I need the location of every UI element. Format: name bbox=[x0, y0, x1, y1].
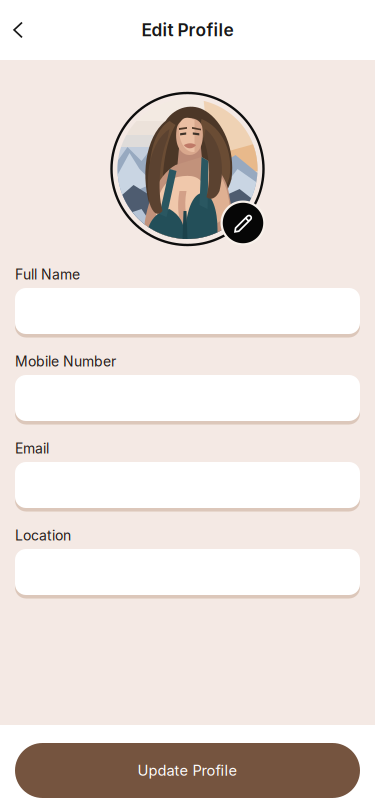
staticText: Mobile Number bbox=[15, 353, 116, 370]
staticText: Location bbox=[15, 527, 71, 544]
staticText: Full Name bbox=[15, 266, 80, 283]
button[interactable]: Update Profile bbox=[15, 743, 360, 798]
staticText: Edit Profile bbox=[141, 19, 233, 40]
button[interactable]: Change profile photo bbox=[219, 199, 267, 247]
staticText: Email bbox=[15, 440, 49, 457]
staticText: Update Profile bbox=[137, 762, 237, 779]
button[interactable]: Back bbox=[0, 8, 44, 52]
